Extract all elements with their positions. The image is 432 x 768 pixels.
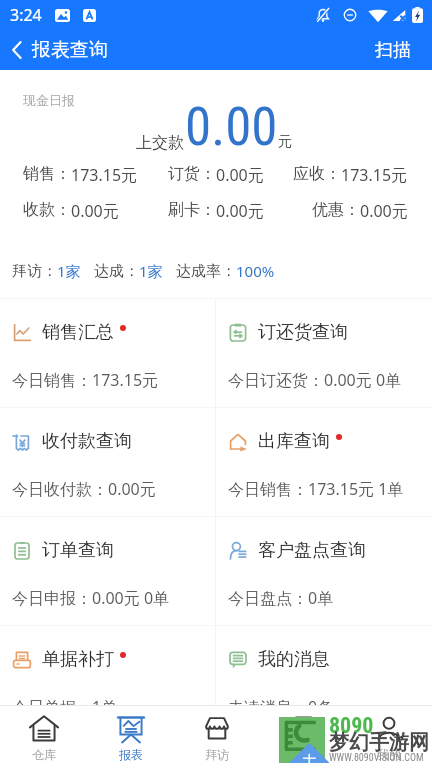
button[interactable]: 客户盘点查询 xyxy=(216,517,432,625)
button[interactable]: 扫描 xyxy=(361,30,432,70)
button[interactable]: 订单查询 xyxy=(0,517,215,625)
button[interactable]: 仓库 xyxy=(0,705,87,768)
staticText: 通讯录 xyxy=(285,747,321,762)
staticText: WWW.8090VISION.COM xyxy=(329,752,424,764)
staticText: 3:24 xyxy=(10,4,42,26)
staticText: 1家 xyxy=(139,261,163,281)
button[interactable]: 销售汇总 xyxy=(0,299,215,407)
button[interactable]: 单据补打 xyxy=(0,626,215,735)
button[interactable]: 通讯录 xyxy=(260,705,346,768)
staticText: 0.00元 xyxy=(216,164,264,186)
staticText: 今日单据：1单 xyxy=(12,696,118,718)
staticText: 今日申报：0.00元 0单 xyxy=(12,587,170,609)
staticText: 100% xyxy=(236,261,275,281)
staticText: 销售汇总 xyxy=(42,321,114,344)
staticText: 扫描 xyxy=(375,39,411,62)
staticText: 达成率： xyxy=(176,262,236,281)
staticText: 我的 xyxy=(377,747,401,762)
staticText: 客户盘点查询 xyxy=(258,539,366,562)
staticText: 今日订还货：0.00元 0单 xyxy=(228,369,402,391)
staticText: 刷卡： xyxy=(168,200,216,220)
staticText: 我的消息 xyxy=(258,648,330,671)
staticText: 梦幻手游网 xyxy=(329,730,429,755)
staticText: 单据补打 xyxy=(42,648,114,671)
button[interactable]: Back xyxy=(7,30,118,70)
staticText: 收款： xyxy=(23,200,71,220)
staticText: 0.00元 xyxy=(216,200,264,222)
staticText: 0.00元 xyxy=(71,200,119,222)
staticText: 订单查询 xyxy=(42,539,114,562)
button[interactable]: 我的 xyxy=(346,705,432,768)
button[interactable]: 订还货查询 xyxy=(216,299,432,407)
button[interactable]: 报表 xyxy=(87,705,174,768)
button[interactable]: 收付款查询 xyxy=(0,408,215,516)
staticText: 达成： xyxy=(94,262,139,281)
staticText: 今日销售：173.15元 1单 xyxy=(228,478,404,500)
staticText: 拜访 xyxy=(205,747,229,762)
button[interactable]: 拜访 xyxy=(174,705,260,768)
staticText: 173.15元 xyxy=(341,164,408,186)
staticText: 今日盘点：0单 xyxy=(228,587,334,609)
staticText: 订货： xyxy=(168,164,216,184)
staticText: 未读消息：0条 xyxy=(228,696,334,718)
button[interactable]: 我的消息 xyxy=(216,626,432,735)
staticText: 元 xyxy=(278,133,292,151)
button[interactable]: 出库查询 xyxy=(216,408,432,516)
staticText: 现金日报 xyxy=(23,92,75,108)
staticText: 销售： xyxy=(23,164,71,184)
staticText: 出库查询 xyxy=(258,430,330,453)
staticText: 8090 xyxy=(329,713,374,739)
staticText: 上交款 xyxy=(136,133,184,153)
staticText: 拜访： xyxy=(12,262,57,281)
staticText: 报表查询 xyxy=(32,38,108,62)
staticText: 0.00 xyxy=(185,96,278,158)
staticText: 报表 xyxy=(119,747,143,762)
staticText: 1家 xyxy=(57,261,81,281)
staticText: 优惠： xyxy=(312,200,360,220)
staticText: 仓库 xyxy=(32,747,56,762)
staticText: 今日销售：173.15元 xyxy=(12,369,159,391)
staticText: 今日收付款：0.00元 xyxy=(12,478,156,500)
staticText: 173.15元 xyxy=(71,164,138,186)
staticText: 应收： xyxy=(293,164,341,184)
staticText: 订还货查询 xyxy=(258,321,348,344)
staticText: 收付款查询 xyxy=(42,430,132,453)
staticText: 0.00元 xyxy=(360,200,408,222)
